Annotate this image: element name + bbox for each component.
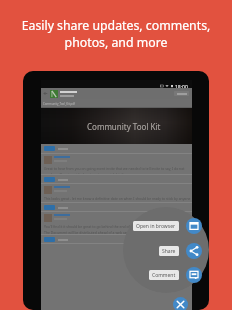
- button[interactable]: Share: [159, 246, 179, 256]
- staticText: 18:00: [175, 84, 188, 88]
- staticText: The Document will be distributed ahead o…: [44, 230, 167, 235]
- button[interactable]: Comment: [186, 267, 202, 283]
- staticText: Comment: [152, 272, 176, 278]
- button[interactable]: Close menu: [173, 297, 188, 310]
- staticText: You'll find it it should be great to go …: [44, 224, 146, 229]
- button[interactable]: Back: [43, 91, 48, 96]
- staticText: This looks great - let me know a definit…: [44, 196, 192, 201]
- button[interactable]: Comment: [149, 270, 179, 280]
- staticText: we also will go in quick close to get on…: [44, 172, 125, 175]
- staticText: Share: [162, 248, 176, 254]
- staticText: Community_Tool_Kit.pdf: [43, 102, 75, 106]
- button[interactable]: Open in browser: [186, 218, 202, 234]
- staticText: Easily share updates, comments, photos, …: [0, 17, 232, 51]
- button[interactable]: Share: [186, 243, 202, 259]
- button[interactable]: [44, 237, 55, 242]
- button[interactable]: [174, 91, 189, 96]
- staticText: Community Tool Kit: [87, 121, 161, 132]
- button[interactable]: Open in browser: [133, 221, 179, 231]
- staticText: Open in browser: [136, 223, 176, 229]
- button[interactable]: [44, 146, 55, 151]
- button[interactable]: [44, 205, 55, 210]
- staticText: Great to hear from you on going event in…: [44, 166, 192, 171]
- button[interactable]: [44, 177, 55, 182]
